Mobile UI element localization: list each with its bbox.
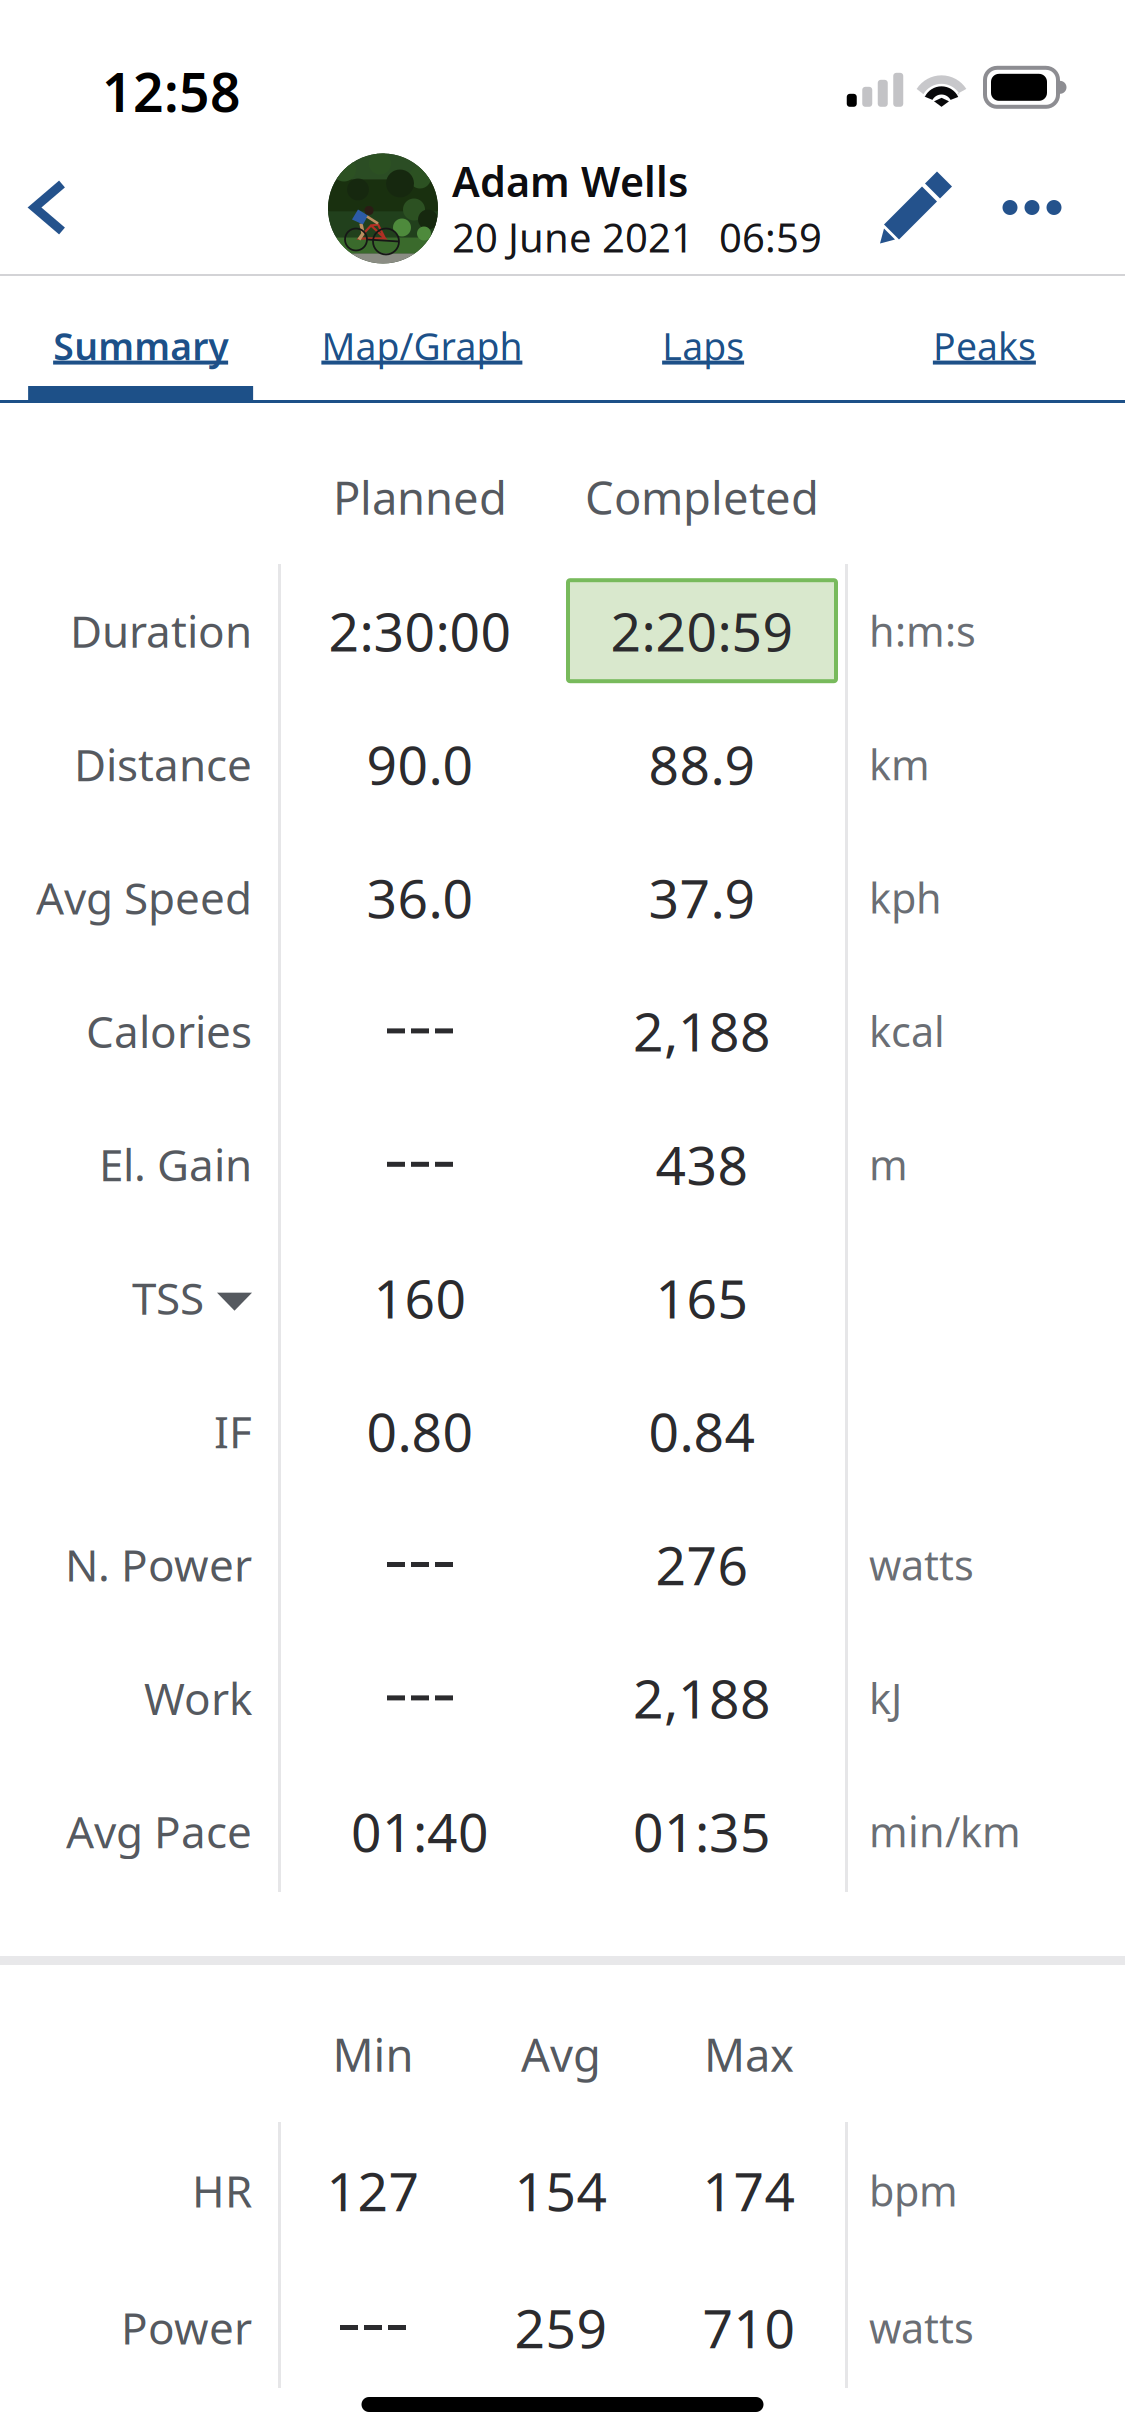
staticText: Adam Wells: [452, 153, 688, 208]
staticText: Laps: [662, 321, 744, 371]
button[interactable]: More options: [992, 142, 1072, 273]
staticText: 37.9: [648, 862, 755, 933]
staticText: 88.9: [648, 729, 755, 799]
staticText: min/km: [869, 1804, 1021, 1859]
staticText: 01:35: [633, 1796, 771, 1867]
staticText: 0.84: [648, 1396, 755, 1466]
button[interactable]: Laps: [562, 276, 844, 403]
staticText: 160: [373, 1262, 466, 1333]
staticText: N. Power: [65, 1535, 252, 1594]
staticText: Power: [121, 2298, 252, 2357]
staticText: TSS: [132, 1268, 204, 1327]
staticText: 36.0: [366, 862, 473, 933]
staticText: h:m:s: [869, 603, 976, 658]
staticText: 2,188: [633, 995, 771, 1066]
button[interactable]: TSS: [0, 1231, 252, 1364]
staticText: bpm: [869, 2163, 958, 2218]
staticText: Planned: [333, 467, 507, 527]
staticText: Min: [332, 2024, 413, 2084]
button[interactable]: Map/Graph: [281, 276, 562, 403]
staticText: Avg Pace: [66, 1802, 252, 1860]
staticText: 90.0: [366, 729, 473, 799]
staticText: 0.80: [366, 1396, 473, 1466]
staticText: watts: [869, 1537, 974, 1592]
button[interactable]: Edit workout: [863, 142, 973, 273]
staticText: Avg Speed: [36, 868, 252, 927]
button[interactable]: Summary: [0, 276, 281, 403]
staticText: 01:40: [351, 1796, 489, 1867]
staticText: kJ: [869, 1670, 902, 1725]
staticText: 710: [702, 2292, 795, 2363]
staticText: Avg: [521, 2024, 601, 2084]
staticText: Calories: [86, 1002, 252, 1060]
staticText: Duration: [70, 601, 252, 660]
staticText: kph: [869, 870, 942, 925]
staticText: 20 June 2021: [452, 210, 694, 263]
staticText: Completed: [585, 467, 819, 527]
staticText: m: [869, 1137, 908, 1192]
staticText: Map/Graph: [321, 321, 522, 371]
staticText: 259: [514, 2292, 607, 2363]
staticText: km: [869, 737, 930, 792]
staticText: 438: [655, 1129, 748, 1200]
staticText: IF: [214, 1402, 252, 1460]
staticText: watts: [869, 2300, 974, 2355]
staticText: 2,188: [633, 1662, 771, 1733]
staticText: Peaks: [933, 321, 1036, 371]
staticText: Distance: [74, 735, 252, 793]
staticText: Summary: [53, 321, 228, 371]
staticText: 2:30:00: [328, 595, 511, 666]
staticText: kcal: [869, 1003, 945, 1058]
button[interactable]: Back: [0, 142, 96, 273]
staticText: Work: [144, 1669, 252, 1727]
button[interactable]: Peaks: [844, 276, 1125, 403]
staticText: 2:20:59: [610, 595, 793, 666]
staticText: 12:58: [102, 56, 241, 127]
staticText: Max: [704, 2024, 794, 2084]
staticText: 276: [655, 1529, 748, 1600]
staticText: El. Gain: [99, 1135, 252, 1193]
staticText: 127: [326, 2155, 419, 2226]
staticText: 174: [702, 2155, 795, 2226]
staticText: 154: [514, 2155, 607, 2226]
staticText: 165: [655, 1262, 748, 1333]
staticText: HR: [192, 2161, 252, 2220]
staticText: 06:59: [719, 210, 822, 263]
